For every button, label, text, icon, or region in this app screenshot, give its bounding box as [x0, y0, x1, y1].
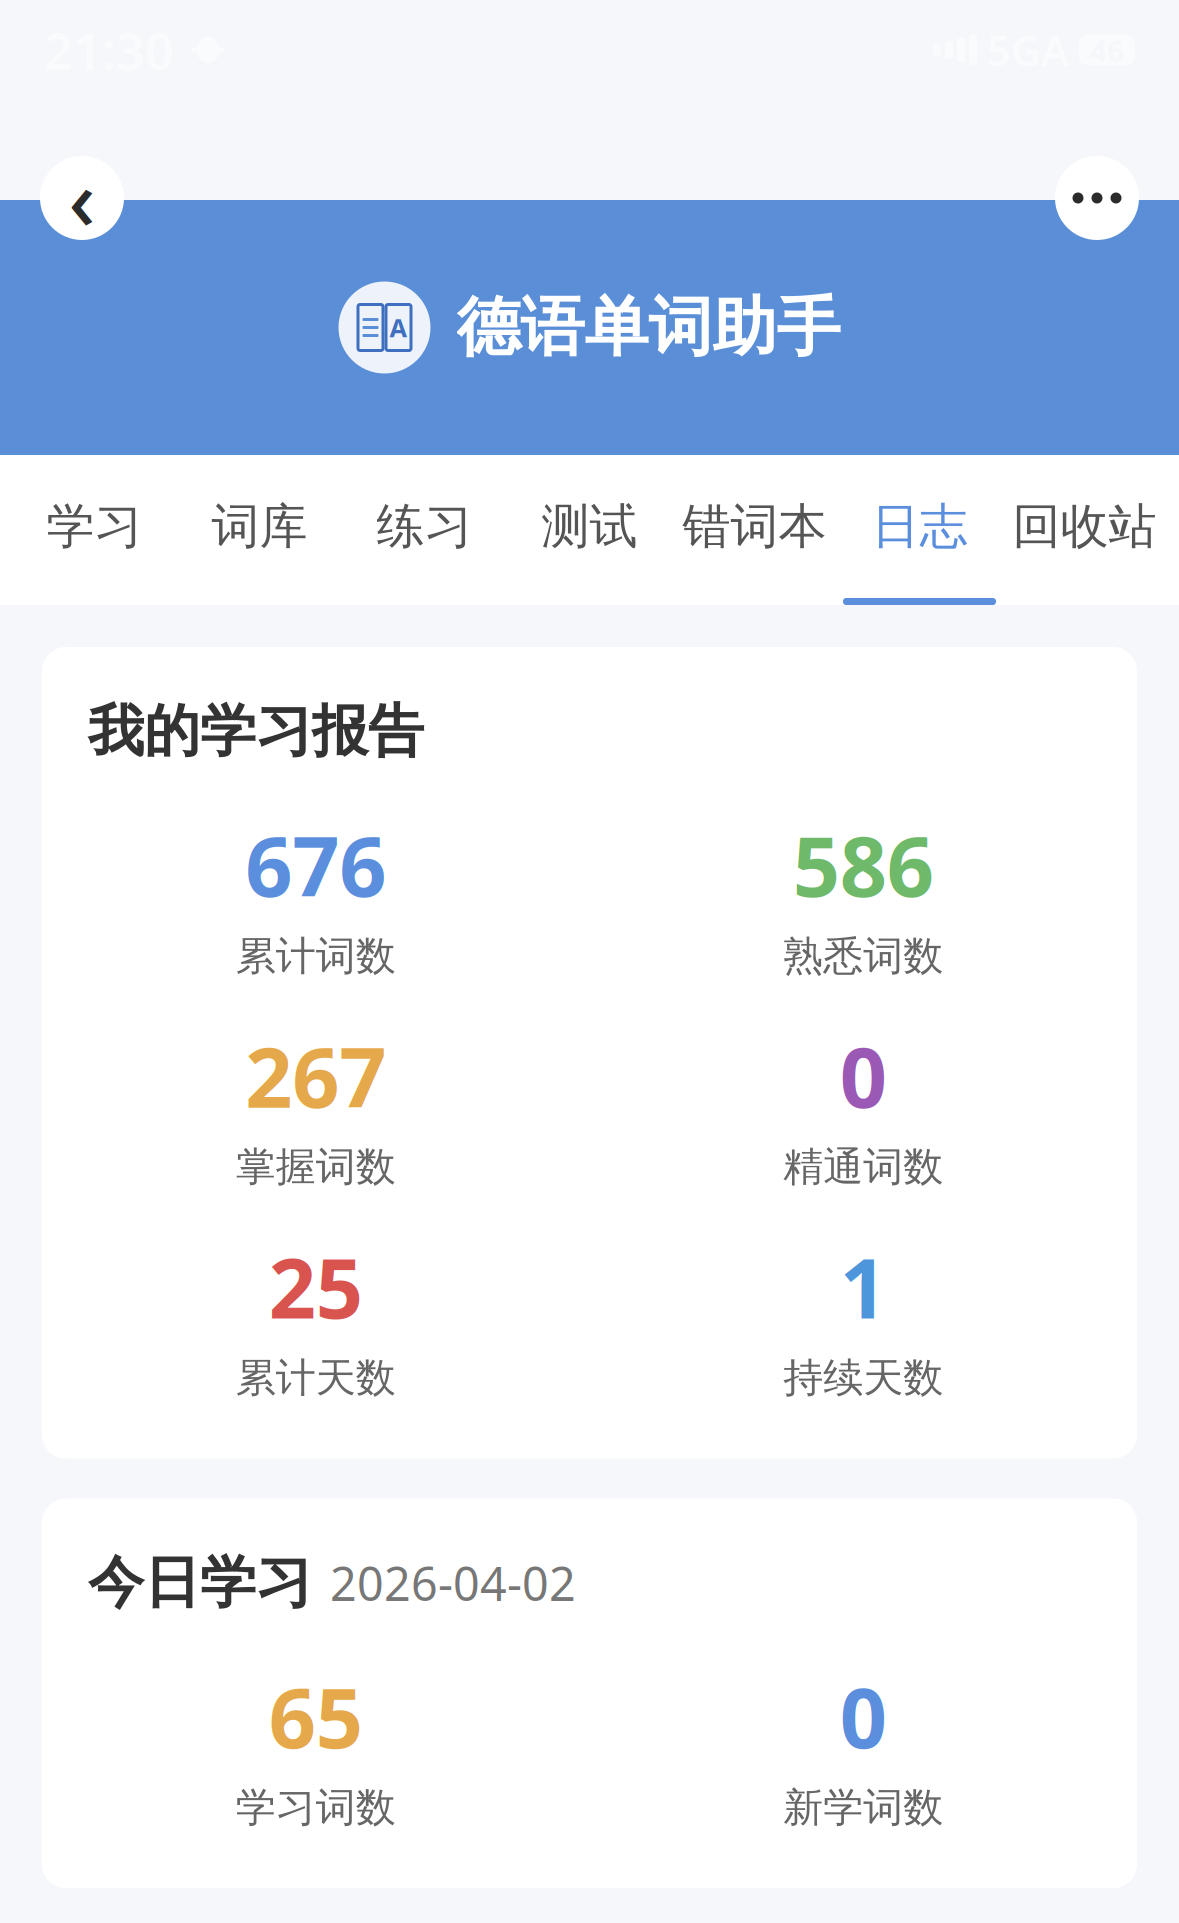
- staticText: 学习词数: [236, 1783, 396, 1832]
- staticText: 练习: [376, 497, 472, 556]
- staticText: 持续天数: [783, 1353, 943, 1402]
- button[interactable]: 回收站: [1002, 455, 1167, 605]
- staticText: 25: [269, 1232, 363, 1341]
- staticText: 267: [245, 1021, 386, 1130]
- button[interactable]: More options: [1055, 156, 1139, 240]
- staticText: 精通词数: [783, 1142, 943, 1192]
- staticText: 新学词数: [783, 1783, 943, 1832]
- staticText: 累计词数: [236, 932, 396, 981]
- button[interactable]: 错词本: [672, 455, 837, 605]
- button[interactable]: 日志: [837, 455, 1002, 605]
- staticText: 德语单词助手: [456, 288, 840, 367]
- staticText: A: [389, 311, 407, 344]
- staticText: 676: [245, 810, 386, 920]
- staticText: 测试: [541, 497, 637, 556]
- staticText: 学习: [46, 497, 142, 556]
- staticText: 日志: [871, 497, 967, 556]
- staticText: 2026-04-02: [330, 1552, 576, 1614]
- staticText: 错词本: [682, 497, 826, 556]
- staticText: 65: [269, 1661, 363, 1771]
- staticText: 1: [840, 1232, 887, 1341]
- button[interactable]: 词库: [177, 455, 342, 605]
- staticText: 今日学习: [88, 1548, 312, 1617]
- staticText: 回收站: [1012, 497, 1156, 556]
- staticText: 我的学习报告: [88, 697, 424, 766]
- button[interactable]: 测试: [507, 455, 672, 605]
- button[interactable]: Back: [40, 156, 124, 240]
- staticText: 0: [840, 1021, 887, 1130]
- staticText: 掌握词数: [236, 1142, 396, 1192]
- button[interactable]: 练习: [342, 455, 507, 605]
- staticText: ‹: [68, 143, 95, 253]
- staticText: 熟悉词数: [783, 932, 943, 981]
- staticText: 词库: [211, 497, 307, 556]
- button[interactable]: 学习: [12, 455, 177, 605]
- staticText: 586: [793, 810, 934, 920]
- staticText: 累计天数: [236, 1353, 396, 1402]
- staticText: 0: [840, 1661, 887, 1771]
